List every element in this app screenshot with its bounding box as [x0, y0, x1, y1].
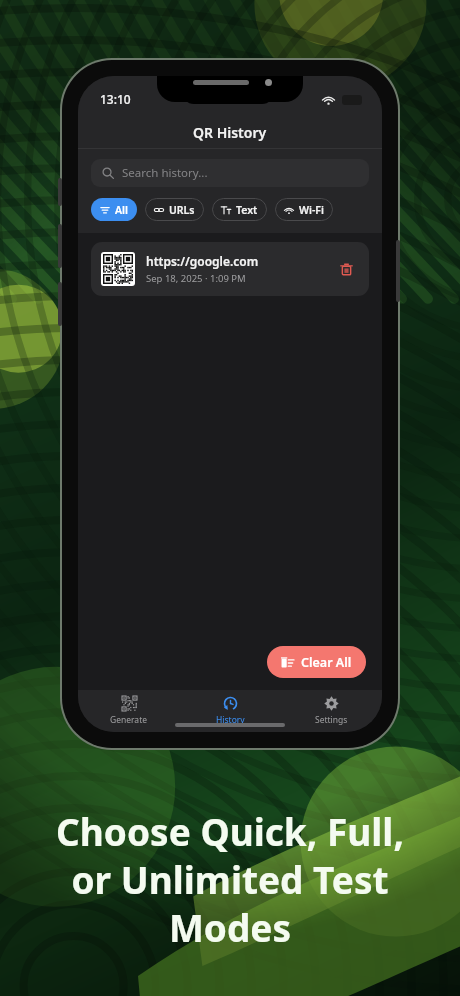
staticText: Settings — [315, 714, 348, 726]
staticText: All — [115, 203, 128, 217]
staticText: URLs — [169, 203, 195, 217]
button[interactable]: Text — [212, 198, 267, 221]
button[interactable]: URLs — [145, 198, 204, 221]
button[interactable]: Delete — [333, 256, 359, 282]
staticText: Generate — [110, 714, 148, 726]
staticText: Clear All — [301, 654, 352, 671]
staticText: Search history... — [122, 165, 208, 181]
staticText: History — [216, 714, 245, 726]
button[interactable]: Wi-Fi — [275, 198, 333, 221]
staticText: https://google.com — [146, 253, 259, 269]
staticText: QR History — [193, 123, 267, 142]
button[interactable]: Settings — [281, 690, 382, 732]
button[interactable]: Clear All — [267, 646, 366, 678]
staticText: 13:10 — [100, 91, 131, 107]
button[interactable]: All — [91, 198, 137, 221]
button[interactable]: Generate — [78, 690, 180, 732]
staticText: Wi-Fi — [299, 203, 324, 217]
button[interactable]: Search history... — [91, 159, 369, 187]
staticText: Choose Quick, Full, or Unlimited Test Mo… — [56, 806, 404, 953]
staticText: Sep 18, 2025 · 1:09 PM — [146, 272, 246, 285]
button[interactable]: https://google.com — [91, 242, 369, 296]
button[interactable]: History — [180, 690, 281, 732]
staticText: Text — [236, 203, 258, 217]
